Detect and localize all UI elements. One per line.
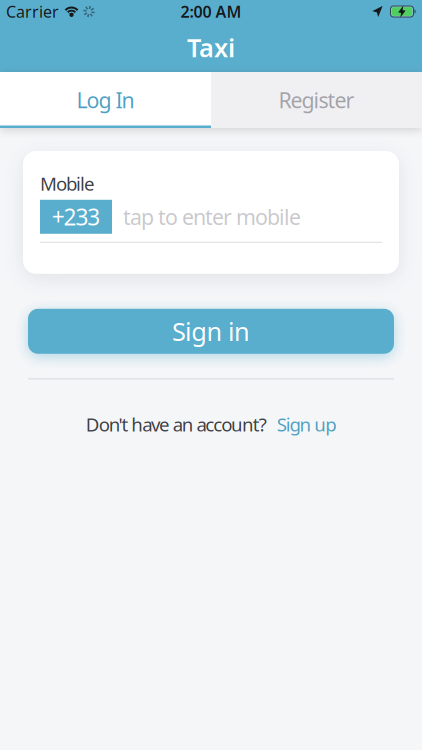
- staticText: Mobile: [40, 171, 95, 196]
- staticText: Carrier: [6, 1, 59, 22]
- staticText: Log In: [76, 86, 134, 114]
- staticText: Sign up: [277, 412, 336, 437]
- button[interactable]: Register: [211, 72, 422, 128]
- staticText: Sign in: [172, 314, 250, 348]
- staticText: Don't have an account?: [86, 412, 267, 437]
- button[interactable]: Sign in: [28, 309, 394, 354]
- staticText: Taxi: [187, 31, 235, 64]
- button[interactable]: Log In: [0, 72, 211, 128]
- staticText: +233: [52, 202, 100, 232]
- button[interactable]: Sign up: [277, 412, 336, 437]
- button[interactable]: tap to enter mobile: [123, 203, 301, 231]
- staticText: 2:00 AM: [180, 1, 241, 22]
- staticText: tap to enter mobile: [123, 203, 301, 231]
- button[interactable]: +233: [40, 200, 112, 234]
- staticText: Register: [278, 86, 354, 114]
